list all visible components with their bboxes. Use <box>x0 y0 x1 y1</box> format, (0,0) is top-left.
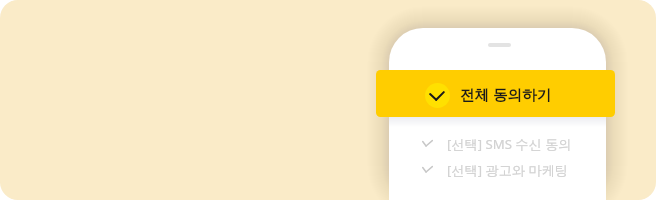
other: 선택 동의 체크 <box>422 166 433 173</box>
staticText: [선택] SMS 수신 동의 <box>447 135 572 153</box>
button[interactable]: 선택 동의 체크 <box>422 160 569 179</box>
staticText: [선택] 광고와 마케팅 <box>447 161 569 179</box>
button[interactable]: 선택 동의 체크 <box>422 134 572 153</box>
other: 선택 동의 체크 <box>422 140 433 147</box>
button[interactable]: 전체 동의하기 <box>376 70 615 117</box>
staticText: 전체 동의하기 <box>460 84 552 104</box>
